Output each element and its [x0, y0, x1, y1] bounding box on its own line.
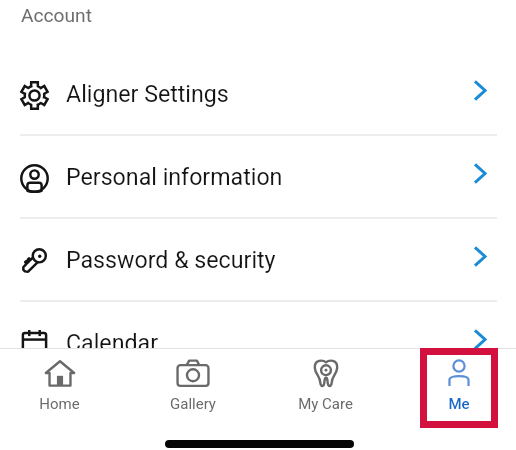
other: Open Personal information: [474, 164, 486, 183]
other: Open Aligner Settings: [474, 81, 486, 100]
button[interactable]: Home: [0, 349, 119, 413]
staticText: Personal information: [66, 163, 283, 190]
button[interactable]: Calendar: [0, 300, 516, 383]
staticText: Password & security: [66, 246, 276, 273]
staticText: Me: [448, 395, 470, 413]
button[interactable]: My Care: [266, 349, 385, 413]
button[interactable]: Gallery: [133, 349, 252, 413]
staticText: Calendar: [66, 329, 158, 356]
button[interactable]: Me: [399, 349, 516, 413]
staticText: Gallery: [170, 395, 216, 413]
staticText: Account: [21, 4, 92, 27]
button[interactable]: Personal information: [0, 134, 516, 217]
staticText: My Care: [298, 395, 353, 413]
other: Open Password & security: [474, 247, 486, 266]
staticText: Aligner Settings: [66, 80, 229, 107]
button[interactable]: Password & security: [0, 217, 516, 300]
other: Open Calendar: [474, 330, 486, 349]
button[interactable]: Aligner Settings: [0, 51, 516, 134]
staticText: Home: [39, 395, 80, 413]
